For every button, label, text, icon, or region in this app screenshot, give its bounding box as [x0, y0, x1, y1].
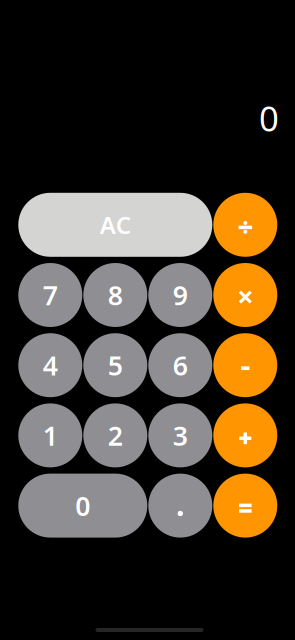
button[interactable]: Subtract [213, 333, 277, 397]
staticText: 8 [108, 277, 123, 313]
staticText: 1 [43, 418, 58, 453]
button[interactable]: 0 [18, 474, 147, 538]
button[interactable]: Divide [213, 193, 277, 257]
staticText: 2 [108, 418, 123, 453]
staticText: 6 [173, 347, 188, 383]
staticText: 3 [173, 418, 188, 453]
button[interactable]: 8 [83, 263, 147, 327]
button[interactable]: Equals [213, 474, 277, 538]
staticText: 5 [108, 347, 123, 383]
button[interactable]: 6 [148, 333, 212, 397]
button[interactable]: 2 [83, 403, 147, 467]
button[interactable]: 3 [148, 403, 212, 467]
button[interactable]: 4 [18, 333, 82, 397]
button[interactable]: Decimal point [148, 474, 212, 538]
button[interactable]: Multiply [213, 263, 277, 327]
button[interactable]: 7 [18, 263, 82, 327]
staticText: 0 [75, 488, 90, 523]
staticText: AC [100, 209, 131, 241]
staticText: 9 [173, 277, 188, 313]
staticText: 0 [259, 95, 279, 141]
button[interactable]: AC [18, 193, 212, 257]
button[interactable]: 1 [18, 403, 82, 467]
staticText: 4 [43, 347, 58, 383]
staticText: 7 [43, 277, 58, 313]
button[interactable]: 5 [83, 333, 147, 397]
button[interactable]: Add [213, 403, 277, 467]
button[interactable]: 9 [148, 263, 212, 327]
